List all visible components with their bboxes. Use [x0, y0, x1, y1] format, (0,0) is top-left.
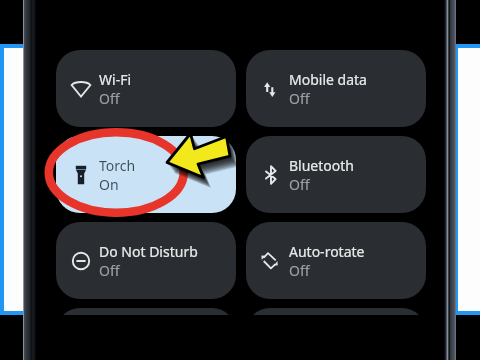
button[interactable]: Bluetooth [246, 136, 426, 213]
staticText: Bluetooth [289, 156, 354, 175]
button[interactable]: Auto-rotate [246, 222, 426, 299]
button[interactable]: Mobile data [246, 50, 426, 127]
staticText: On [99, 175, 119, 194]
staticText: Off [99, 89, 120, 108]
button[interactable]: Quick setting tile [56, 308, 236, 315]
button[interactable]: Torch [56, 136, 236, 213]
staticText: Off [289, 89, 310, 108]
button[interactable]: Wi-Fi [56, 50, 236, 127]
button[interactable]: Quick setting tile [246, 308, 426, 315]
staticText: Off [289, 261, 310, 280]
staticText: Auto-rotate [289, 242, 365, 261]
button[interactable]: Do Not Disturb [56, 222, 236, 299]
staticText: Mobile data [289, 70, 367, 89]
staticText: Do Not Disturb [99, 242, 198, 261]
staticText: Off [289, 175, 310, 194]
staticText: Torch [99, 156, 136, 175]
staticText: Wi-Fi [99, 70, 132, 89]
staticText: Off [99, 261, 120, 280]
